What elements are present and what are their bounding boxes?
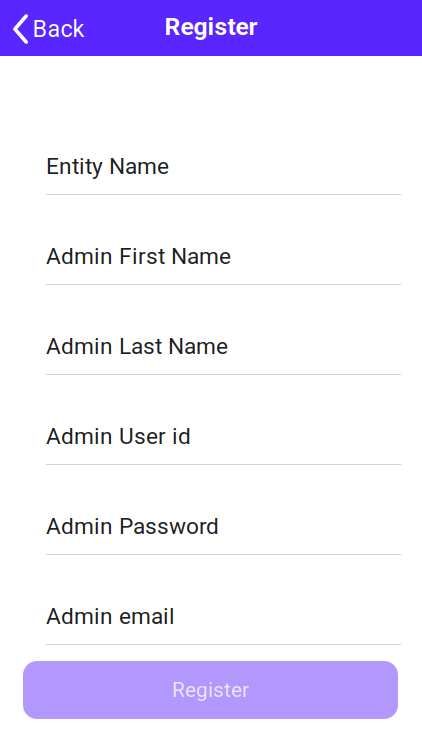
button[interactable]: Back [0,0,94,56]
button[interactable]: Admin Password [24,512,401,555]
staticText: Register [164,12,257,41]
staticText: Admin User id [46,423,191,450]
button[interactable]: Admin User id [24,422,401,465]
staticText: Entity Name [46,153,169,180]
button[interactable]: Entity Name [24,152,401,195]
button[interactable]: Admin Last Name [24,332,401,375]
staticText: Register [172,678,249,702]
staticText: Back [32,15,84,43]
button[interactable]: Admin First Name [24,242,401,285]
button[interactable]: Register [23,661,398,719]
button[interactable]: Admin email [24,602,401,645]
staticText: Admin Last Name [46,333,228,360]
staticText: Admin Password [46,513,219,540]
staticText: Admin email [46,603,175,630]
staticText: Admin First Name [46,243,231,270]
